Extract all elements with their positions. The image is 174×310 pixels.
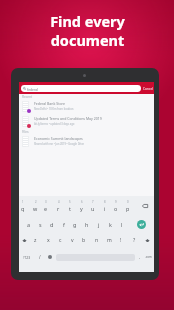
button[interactable]: v — [66, 232, 78, 248]
staticText: 1 — [22, 200, 24, 204]
staticText: w — [33, 205, 38, 212]
staticText: f — [63, 221, 65, 228]
button[interactable]: l — [116, 216, 128, 232]
button[interactable]: m — [103, 232, 115, 248]
staticText: i — [104, 205, 106, 212]
button[interactable]: 7 — [87, 198, 99, 214]
staticText: q — [21, 205, 25, 212]
button[interactable]: federal — [21, 85, 141, 92]
button[interactable]: Enter — [128, 216, 154, 232]
staticText: 3 — [45, 200, 47, 204]
staticText: 0 — [127, 200, 129, 204]
staticText: Cancel — [143, 87, 154, 91]
button[interactable]: Updated Terms and Conditions May 2019 — [19, 115, 154, 127]
button[interactable]: x — [42, 232, 54, 248]
button[interactable]: f — [58, 216, 70, 232]
staticText: t — [69, 205, 71, 212]
staticText: . — [139, 254, 141, 260]
staticText: e — [44, 205, 48, 212]
staticText: u — [91, 205, 95, 212]
button[interactable]: 9 — [110, 198, 122, 214]
button[interactable]: Shift — [140, 232, 154, 248]
staticText: v — [71, 237, 74, 244]
button[interactable]: ?123 — [19, 249, 35, 265]
staticText: Economic Summit landscapes — [34, 136, 83, 141]
button[interactable]: Cancel — [142, 82, 154, 94]
button[interactable]: Shift — [19, 232, 29, 248]
staticText: bit.ly/terms • updated 3 days ago — [34, 122, 75, 126]
button[interactable]: Economic Summit landscapes — [19, 135, 154, 147]
staticText: New Delhi • 10 Km from location — [34, 107, 74, 111]
staticText: x — [47, 237, 50, 244]
button[interactable]: 5 — [64, 198, 76, 214]
staticText: .com — [145, 255, 152, 259]
staticText: r — [57, 205, 60, 212]
staticText: 2 — [35, 200, 37, 204]
staticText: m — [107, 237, 112, 244]
button[interactable]: .com — [143, 249, 154, 265]
staticText: Updated Terms and Conditions May 2019 — [34, 116, 102, 121]
button[interactable]: Emoji — [45, 249, 55, 265]
staticText: p — [126, 205, 130, 212]
button[interactable]: 1 — [17, 198, 29, 214]
button[interactable]: a — [23, 216, 35, 232]
staticText: Files — [22, 130, 29, 134]
staticText: y — [80, 205, 83, 212]
staticText: z — [34, 237, 37, 244]
staticText: Recent — [22, 95, 32, 99]
button[interactable]: z — [29, 232, 41, 248]
button[interactable]: b — [78, 232, 90, 248]
button[interactable]: h — [81, 216, 93, 232]
staticText: s — [39, 221, 42, 228]
staticText: k — [109, 221, 112, 228]
staticText: a — [27, 221, 31, 228]
staticText: n — [95, 237, 99, 244]
staticText: b — [82, 237, 86, 244]
button[interactable]: 3 — [40, 198, 52, 214]
staticText: c — [59, 237, 62, 244]
staticText: ?123 — [23, 255, 31, 259]
staticText: 5 — [69, 200, 71, 204]
button[interactable]: Backspace — [135, 198, 154, 214]
button[interactable]: 8 — [99, 198, 111, 214]
staticText: Find every document — [50, 11, 125, 50]
button[interactable]: d — [46, 216, 58, 232]
button[interactable]: / — [35, 249, 45, 265]
staticText: 9 — [115, 200, 117, 204]
staticText: o — [114, 205, 118, 212]
button[interactable]: 0 — [122, 198, 134, 214]
staticText: 4 — [58, 200, 60, 204]
staticText: Federal Bank Store — [34, 101, 65, 106]
staticText: l — [121, 221, 123, 228]
button[interactable]: g — [69, 216, 81, 232]
button[interactable]: 4 — [52, 198, 64, 214]
button[interactable]: ! — [115, 232, 127, 248]
button[interactable]: 2 — [29, 198, 41, 214]
staticText: 8 — [104, 200, 106, 204]
staticText: d — [50, 221, 54, 228]
button[interactable]: . — [136, 249, 144, 265]
staticText: federal — [27, 87, 38, 91]
button[interactable]: j — [93, 216, 105, 232]
staticText: g — [73, 221, 77, 228]
staticText: ? — [133, 237, 136, 244]
button[interactable]: c — [54, 232, 66, 248]
button[interactable]: k — [104, 216, 116, 232]
staticText: h — [85, 221, 89, 228]
staticText: j — [98, 221, 100, 228]
staticText: 7 — [92, 200, 94, 204]
staticText: 6 — [81, 200, 83, 204]
button[interactable]: ? — [128, 232, 140, 248]
staticText: ! — [120, 237, 122, 244]
button[interactable]: 6 — [75, 198, 87, 214]
button[interactable]: n — [91, 232, 103, 248]
staticText: / — [39, 254, 41, 260]
button[interactable]: Federal Bank Store — [19, 100, 154, 112]
staticText: Shared with me • Jun 2019 • Google Drive — [34, 142, 85, 146]
button[interactable]: s — [34, 216, 46, 232]
